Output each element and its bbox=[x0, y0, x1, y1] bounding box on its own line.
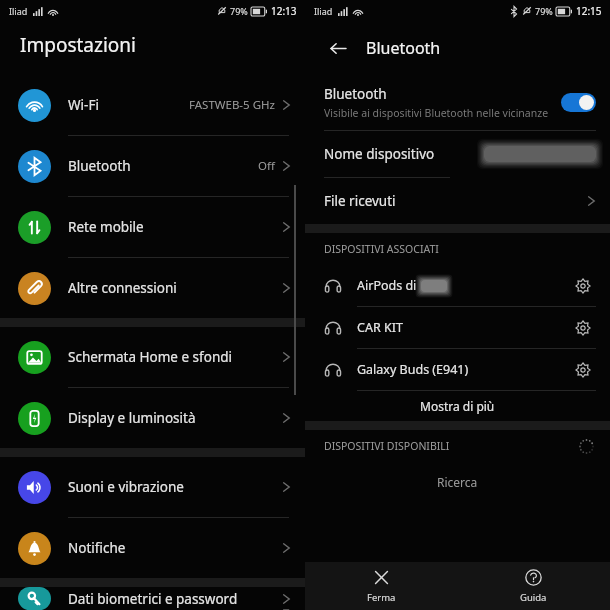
button[interactable]: AirPods di bbox=[305, 265, 610, 306]
staticText: Bluetooth bbox=[366, 37, 441, 59]
staticText: Rete mobile bbox=[68, 218, 144, 236]
staticText: Display e luminosità bbox=[68, 409, 196, 427]
button[interactable]: Impostazioni dispositivo bbox=[570, 357, 596, 383]
staticText: 79% bbox=[535, 5, 553, 17]
staticText: Visibile ai dispositivi Bluetooth nelle … bbox=[324, 106, 549, 120]
staticText: 79% bbox=[230, 5, 248, 17]
button[interactable]: Dati biometrici e password bbox=[0, 587, 305, 610]
button[interactable]: Schermata Home e sfondi bbox=[0, 327, 305, 387]
staticText: Wi-Fi bbox=[68, 96, 99, 114]
button[interactable]: Rete mobile bbox=[0, 197, 305, 257]
button[interactable]: File ricevuti bbox=[305, 178, 610, 224]
staticText: Suoni e vibrazione bbox=[68, 478, 184, 496]
staticText: Off bbox=[258, 158, 275, 174]
button[interactable]: Bluetooth bbox=[0, 136, 305, 196]
button[interactable]: Mostra di più bbox=[305, 391, 610, 421]
button[interactable]: Altre connessioni bbox=[0, 258, 305, 318]
staticText: Iliad bbox=[9, 5, 28, 17]
staticText: Notifiche bbox=[68, 539, 126, 557]
button[interactable]: Ferma bbox=[305, 562, 457, 610]
button[interactable]: CAR KIT bbox=[305, 307, 610, 348]
staticText: 12:15 bbox=[576, 4, 602, 18]
button[interactable]: Bluetooth toggle bbox=[561, 93, 596, 112]
button[interactable]: Guida bbox=[457, 562, 610, 610]
staticText: Bluetooth bbox=[324, 85, 387, 103]
staticText: DISPOSITIVI ASSOCIATI bbox=[324, 242, 439, 256]
staticText: Altre connessioni bbox=[68, 279, 177, 297]
staticText: Bluetooth bbox=[68, 157, 131, 175]
button[interactable]: Nome dispositivo bbox=[305, 131, 610, 177]
staticText: Impostazioni bbox=[20, 32, 136, 58]
staticText: Iliad bbox=[314, 5, 333, 17]
button[interactable]: Back bbox=[323, 33, 353, 63]
staticText: Dati biometrici e password bbox=[68, 590, 238, 608]
staticText: Nome dispositivo bbox=[324, 145, 435, 163]
button[interactable]: Bluetooth bbox=[305, 81, 610, 130]
button[interactable]: Impostazioni dispositivo bbox=[570, 315, 596, 341]
staticText: CAR KIT bbox=[357, 319, 403, 336]
staticText: Ferma bbox=[367, 591, 396, 604]
button[interactable]: Suoni e vibrazione bbox=[0, 457, 305, 517]
button[interactable]: Notifiche bbox=[0, 518, 305, 578]
staticText: Guida bbox=[520, 591, 547, 604]
staticText: File ricevuti bbox=[324, 192, 396, 210]
staticText: Schermata Home e sfondi bbox=[68, 348, 233, 366]
staticText: FASTWEB-5 GHz bbox=[189, 97, 275, 113]
staticText: AirPods di bbox=[357, 277, 417, 294]
button[interactable]: Wi-Fi bbox=[0, 75, 305, 135]
staticText: Ricerca bbox=[437, 474, 478, 490]
button[interactable]: Galaxy Buds (E941) bbox=[305, 349, 610, 390]
staticText: 12:13 bbox=[271, 4, 297, 18]
button[interactable]: Impostazioni dispositivo bbox=[570, 273, 596, 299]
button[interactable]: Display e luminosità bbox=[0, 388, 305, 448]
staticText: DISPOSITIVI DISPONIBILI bbox=[324, 439, 450, 453]
staticText: Mostra di più bbox=[420, 398, 495, 414]
staticText: Galaxy Buds (E941) bbox=[357, 361, 469, 378]
